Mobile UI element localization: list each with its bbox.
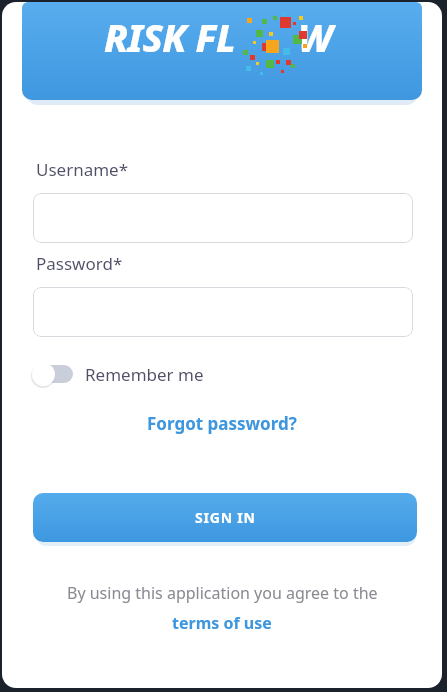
staticText: By using this application you agree to t… — [67, 582, 378, 604]
staticText: SIGN IN — [195, 508, 256, 527]
button[interactable]: SIGN IN — [33, 493, 417, 542]
staticText: Username* — [36, 158, 129, 181]
button[interactable] — [33, 193, 413, 243]
staticText: Remember me — [85, 363, 204, 386]
button[interactable]: Forgot password? — [147, 412, 297, 435]
staticText: RISK FL — [104, 11, 236, 63]
staticText: Password* — [36, 252, 123, 275]
button[interactable] — [33, 287, 413, 337]
button[interactable]: terms of use — [172, 612, 272, 634]
staticText: W — [298, 11, 333, 63]
button[interactable]: Remember me — [30, 360, 204, 388]
